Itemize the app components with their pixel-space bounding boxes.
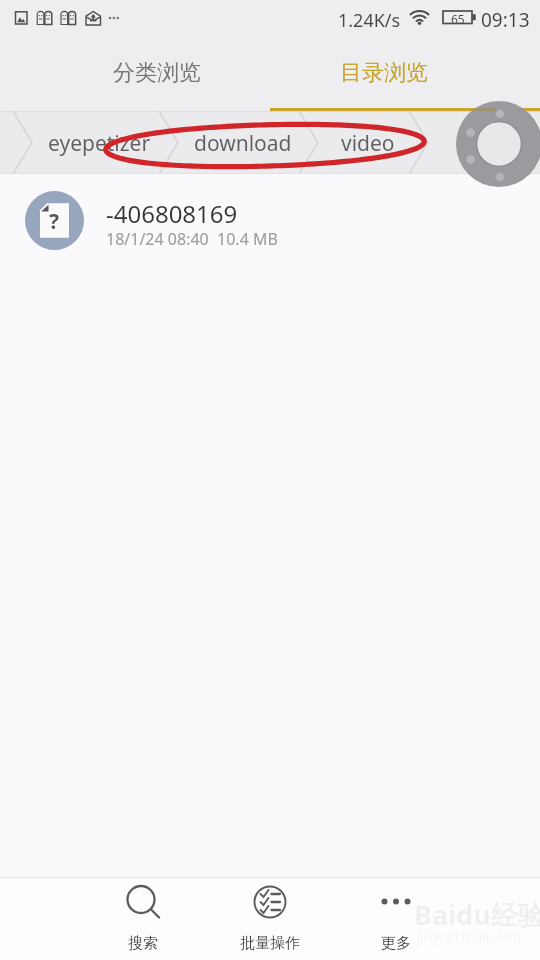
button[interactable]: download bbox=[189, 123, 297, 164]
staticText: 更多 bbox=[381, 934, 411, 953]
button[interactable]: 目录浏览 bbox=[270, 38, 540, 111]
staticText: ? bbox=[49, 207, 60, 236]
button[interactable]: 批量操作 bbox=[218, 878, 322, 960]
button[interactable]: video bbox=[336, 123, 400, 164]
staticText: download bbox=[194, 129, 292, 158]
button[interactable]: 分类浏览 bbox=[0, 38, 270, 111]
staticText: 目录浏览 bbox=[340, 59, 428, 87]
staticText: video bbox=[341, 129, 395, 158]
staticText: 1.24K/s bbox=[338, 8, 401, 33]
button[interactable]: 搜索 bbox=[91, 878, 195, 960]
button[interactable]: Assistive ball bbox=[456, 101, 540, 187]
staticText: 65 bbox=[451, 11, 465, 27]
staticText: 分类浏览 bbox=[113, 59, 201, 87]
button[interactable]: eyepetizer bbox=[43, 123, 156, 164]
staticText: -406808169 bbox=[106, 197, 238, 230]
staticText: Baidu经验 bbox=[414, 896, 540, 933]
button[interactable]: ? bbox=[0, 174, 540, 266]
staticText: 搜索 bbox=[128, 934, 158, 953]
button[interactable]: 更多 bbox=[344, 878, 448, 960]
staticText: 09:13 bbox=[481, 7, 530, 33]
staticText: 18/1/24 08:40 10.4 MB bbox=[106, 228, 278, 250]
staticText: eyepetizer bbox=[48, 129, 151, 158]
staticText: 批量操作 bbox=[240, 934, 300, 953]
